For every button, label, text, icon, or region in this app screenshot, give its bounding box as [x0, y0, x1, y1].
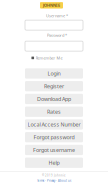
- staticText: Password *: [47, 32, 67, 38]
- button[interactable]: Forgot username: [25, 145, 83, 155]
- staticText: Username *: [46, 13, 68, 18]
- button[interactable]: Forgot password: [25, 132, 83, 142]
- staticText: Help: [48, 159, 59, 166]
- button[interactable]: Rates: [25, 106, 83, 117]
- button[interactable]: Login: [25, 68, 83, 79]
- staticText: Remember Me: [36, 55, 63, 60]
- staticText: Download App: [37, 95, 71, 102]
- staticText: © 2019 Johnnie: [42, 174, 66, 177]
- button[interactable]: Register: [25, 81, 83, 91]
- staticText: Local Access Number: [27, 121, 80, 128]
- button[interactable]: Help: [25, 158, 83, 168]
- staticText: JOHNNIE: [43, 3, 60, 8]
- staticText: Forgot password: [33, 134, 74, 141]
- button[interactable]: Download App: [25, 94, 83, 104]
- staticText: Terms · Privacy · About us: [37, 179, 71, 182]
- button[interactable]: Remember Me: [31, 56, 63, 60]
- button[interactable]: Local Access Number: [25, 119, 83, 130]
- staticText: Login: [47, 70, 60, 77]
- staticText: Forgot username: [33, 146, 75, 153]
- button[interactable]: Terms · Privacy · About us: [37, 179, 71, 182]
- staticText: Register: [44, 83, 64, 90]
- staticText: Rates: [47, 108, 61, 115]
